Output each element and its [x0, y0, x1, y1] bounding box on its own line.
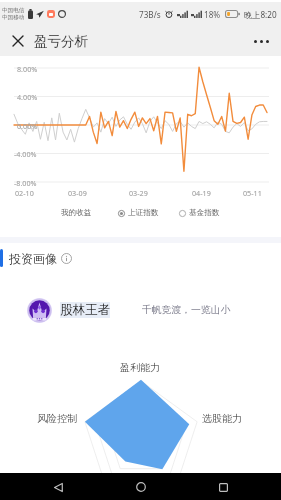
button[interactable]: 上证指数: [116, 208, 161, 218]
staticText: 73B/s: [139, 9, 161, 20]
staticText: 03-29: [129, 188, 148, 198]
staticText: 4.00%: [17, 92, 38, 102]
staticText: -4.00%: [14, 149, 37, 159]
button[interactable]: 返回: [46, 475, 70, 499]
staticText: 基金指数: [189, 208, 220, 218]
button[interactable]: 更多: [249, 29, 273, 53]
staticText: 04-19: [192, 188, 211, 198]
staticText: 8.00%: [17, 64, 38, 74]
staticText: 千帆竞渡，一览山小: [142, 304, 231, 316]
staticText: 中国移动: [2, 14, 25, 21]
button[interactable]: 基金指数: [177, 208, 222, 218]
button[interactable]: 关闭: [7, 30, 29, 52]
staticText: 上证指数: [128, 208, 159, 218]
staticText: 我的收益: [61, 208, 92, 218]
button[interactable]: 我的收益: [59, 208, 94, 218]
staticText: 晚上8:20: [244, 9, 277, 20]
staticText: 风险控制: [37, 412, 77, 425]
staticText: 股林王者: [60, 302, 110, 318]
staticText: 18%: [204, 9, 221, 20]
staticText: 05-11: [243, 188, 262, 198]
staticText: 0.00%: [17, 121, 38, 131]
staticText: 选股能力: [202, 412, 242, 425]
staticText: 中国电信: [2, 7, 25, 14]
staticText: 03-09: [68, 188, 87, 198]
button[interactable]: 说明: [60, 252, 73, 265]
button[interactable]: 主屏幕: [129, 475, 153, 499]
staticText: 盈亏分析: [34, 33, 88, 50]
button[interactable]: 最近任务: [211, 475, 235, 499]
staticText: 投资画像: [9, 251, 57, 266]
staticText: 盈利能力: [120, 361, 160, 374]
staticText: 02-10: [15, 188, 34, 198]
staticText: -8.00%: [14, 178, 37, 188]
